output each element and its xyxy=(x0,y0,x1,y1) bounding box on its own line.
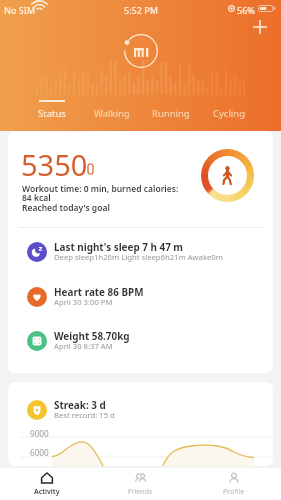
staticText: Best record: 15 d xyxy=(54,410,115,420)
button[interactable]: Friends xyxy=(93,468,187,500)
button[interactable]: Status xyxy=(22,96,82,124)
staticText: 5350 xyxy=(21,145,88,184)
staticText: Status xyxy=(38,107,66,120)
staticText: 56% xyxy=(237,4,255,16)
staticText: Workout time: 0 min, burned calories: xyxy=(22,183,179,195)
button[interactable]: Running xyxy=(141,96,200,124)
button[interactable]: Heart rate 86 BPM xyxy=(8,275,273,319)
staticText: Last night's sleep 7 h 47 m xyxy=(54,240,184,253)
staticText: Reached today's goal xyxy=(22,202,110,214)
button[interactable]: Profile xyxy=(187,468,281,500)
staticText: Walking xyxy=(94,107,130,120)
button[interactable]: Walking xyxy=(82,96,141,124)
staticText: April 30 3:00 PM xyxy=(54,297,113,307)
staticText: Profile xyxy=(223,487,245,497)
staticText: April 30 8:37 AM xyxy=(54,341,113,351)
staticText: Friends xyxy=(128,487,153,497)
staticText: Streak: 3 d xyxy=(54,398,106,411)
staticText: Activity xyxy=(34,487,60,497)
staticText: Weight 58.70kg xyxy=(54,329,130,342)
staticText: Deep sleep1h26m Light sleep6h21m Awake0m xyxy=(54,252,223,262)
staticText: No SIM xyxy=(4,4,36,16)
staticText: 84 kcal xyxy=(22,192,51,204)
button[interactable]: Last night's sleep 7 h 47 m xyxy=(8,230,273,274)
button[interactable]: Activity xyxy=(0,468,93,500)
staticText: Heart rate 86 BPM xyxy=(54,285,144,298)
staticText: 9000 xyxy=(30,428,49,439)
button[interactable]: Streak: 3 d xyxy=(8,388,273,432)
staticText: 5:52 PM xyxy=(124,4,158,16)
staticText: Cycling xyxy=(213,107,246,120)
button[interactable]: Weight 58.70kg xyxy=(8,319,273,363)
button[interactable]: Cycling xyxy=(200,96,259,124)
staticText: Running xyxy=(152,107,190,120)
button[interactable]: Add workout xyxy=(247,14,273,40)
staticText: 6000 xyxy=(30,447,49,458)
